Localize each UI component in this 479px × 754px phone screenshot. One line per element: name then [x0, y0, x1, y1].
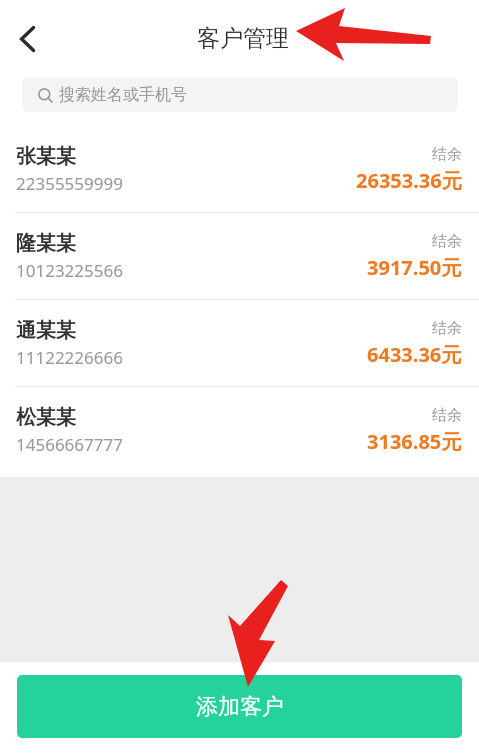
button[interactable]: Back [6, 17, 50, 61]
staticText: 11122226666 [16, 346, 123, 369]
staticText: 22355559999 [16, 172, 123, 195]
staticText: 隆某某 [16, 231, 76, 256]
button[interactable]: 通某某 [0, 300, 479, 387]
staticText: 张某某 [16, 144, 76, 169]
button[interactable]: 隆某某 [0, 213, 479, 300]
staticText: 3136.85元 [367, 428, 462, 455]
button[interactable]: 添加客户 [17, 675, 462, 738]
staticText: 10123225566 [16, 259, 123, 282]
staticText: 松某某 [16, 405, 76, 430]
staticText: 结余 [432, 145, 462, 164]
staticText: 14566667777 [16, 433, 123, 456]
staticText: 通某某 [16, 318, 76, 343]
button[interactable]: 搜索姓名或手机号 [22, 77, 458, 112]
staticText: 客户管理 [197, 24, 289, 53]
staticText: 26353.36元 [356, 167, 462, 194]
button[interactable]: 张某某 [0, 126, 479, 213]
staticText: 添加客户 [196, 693, 284, 721]
staticText: 结余 [432, 232, 462, 251]
button[interactable]: 松某某 [0, 387, 479, 474]
staticText: 3917.50元 [367, 254, 462, 281]
staticText: 搜索姓名或手机号 [59, 85, 187, 105]
staticText: 6433.36元 [367, 341, 462, 368]
staticText: 结余 [432, 319, 462, 338]
staticText: 结余 [432, 406, 462, 425]
